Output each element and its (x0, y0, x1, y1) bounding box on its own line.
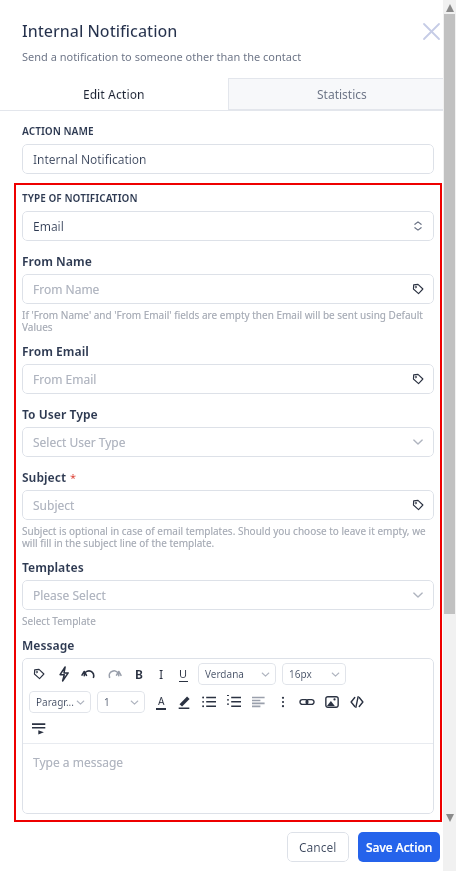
staticText: To User Type (22, 406, 98, 422)
button[interactable]: Redo (104, 664, 124, 684)
staticText: Templates (22, 559, 84, 575)
button[interactable]: 16px (282, 663, 346, 685)
staticText: ACTION NAME (22, 124, 94, 138)
button[interactable]: U (174, 665, 192, 683)
staticText: A (158, 694, 165, 708)
staticText: Statistics (317, 86, 367, 102)
staticText: I (159, 666, 164, 682)
button[interactable]: Internal Notification (22, 144, 434, 174)
button[interactable]: Align (249, 692, 269, 712)
button[interactable]: Insert tag (29, 664, 49, 684)
button[interactable]: Text color (152, 693, 170, 711)
staticText: From Email (22, 343, 89, 359)
staticText: 16px (289, 667, 312, 681)
staticText: From Name (33, 281, 100, 297)
button[interactable]: Save Action (358, 832, 440, 862)
button[interactable]: Highlight (174, 692, 194, 712)
button[interactable]: Edit Action (0, 78, 228, 110)
staticText: From Name (22, 253, 92, 269)
button[interactable]: Please Select (22, 580, 434, 610)
staticText: TYPE OF NOTIFICATION (22, 191, 138, 205)
button[interactable]: Source code (347, 692, 367, 712)
button[interactable]: Cancel (287, 832, 349, 862)
button[interactable]: More options (273, 692, 293, 712)
button[interactable]: Bulleted list (199, 692, 219, 712)
staticText: Email (33, 218, 64, 234)
button[interactable]: B (130, 665, 148, 683)
button[interactable]: From Name (22, 274, 434, 304)
button[interactable]: I (152, 665, 170, 683)
staticText: Select User Type (33, 434, 126, 450)
staticText: Subject is optional in case of email tem… (22, 524, 434, 550)
button[interactable]: Select User Type (22, 427, 434, 457)
staticText: Subject (22, 469, 67, 485)
button[interactable]: From Email (22, 364, 434, 394)
button[interactable]: Insert image (322, 692, 342, 712)
staticText: Paragr... (36, 695, 74, 709)
staticText: U (179, 666, 188, 681)
button[interactable]: Numbered list (224, 692, 244, 712)
staticText: Cancel (299, 839, 337, 855)
staticText: * (70, 470, 77, 485)
staticText: Type a message (33, 754, 124, 770)
button[interactable]: Shortcut (54, 664, 74, 684)
button[interactable]: Subject (22, 490, 434, 520)
staticText: Internal Notification (33, 151, 147, 167)
button[interactable]: Undo (79, 664, 99, 684)
staticText: B (135, 666, 143, 682)
staticText: Select Template (22, 614, 96, 628)
staticText: Subject (33, 497, 75, 513)
button[interactable]: Email (22, 211, 434, 241)
button[interactable]: Close (416, 16, 446, 46)
staticText: Message (22, 637, 75, 653)
button[interactable]: Insert link (297, 692, 317, 712)
button[interactable]: Indent (29, 718, 49, 738)
staticText: Save Action (366, 839, 433, 855)
button[interactable]: Paragr... (29, 691, 91, 713)
button[interactable]: 1 (97, 691, 145, 713)
staticText: From Email (33, 371, 97, 387)
button[interactable]: Type a message (22, 744, 434, 814)
button[interactable]: Verdana (198, 663, 276, 685)
staticText: If 'From Name' and 'From Email' fields a… (22, 308, 434, 334)
staticText: Verdana (205, 667, 244, 681)
staticText: Send a notification to someone other tha… (22, 49, 302, 64)
staticText: 1 (104, 695, 110, 709)
staticText: Internal Notification (22, 20, 416, 42)
staticText: Please Select (33, 587, 106, 603)
staticText: Edit Action (83, 86, 145, 102)
button[interactable]: Statistics (228, 78, 456, 110)
